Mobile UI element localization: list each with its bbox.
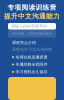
staticText: 提升中文沟通能力: [4, 12, 60, 20]
staticText: 限时优惠 · 立即免费领取课程: [12, 32, 51, 35]
staticText: 课程亮点介绍: [12, 40, 36, 45]
staticText: 专项阅读训练营: [7, 3, 56, 12]
staticText: 专属助教全程陪伴: [15, 62, 47, 67]
staticText: 系统化学习方法与训练: [12, 47, 52, 52]
staticText: 请输入你的手机号码: [11, 24, 47, 29]
staticText: 名师在线直播授课: [15, 55, 47, 59]
staticText: 学习资料永久保存: [15, 69, 47, 74]
